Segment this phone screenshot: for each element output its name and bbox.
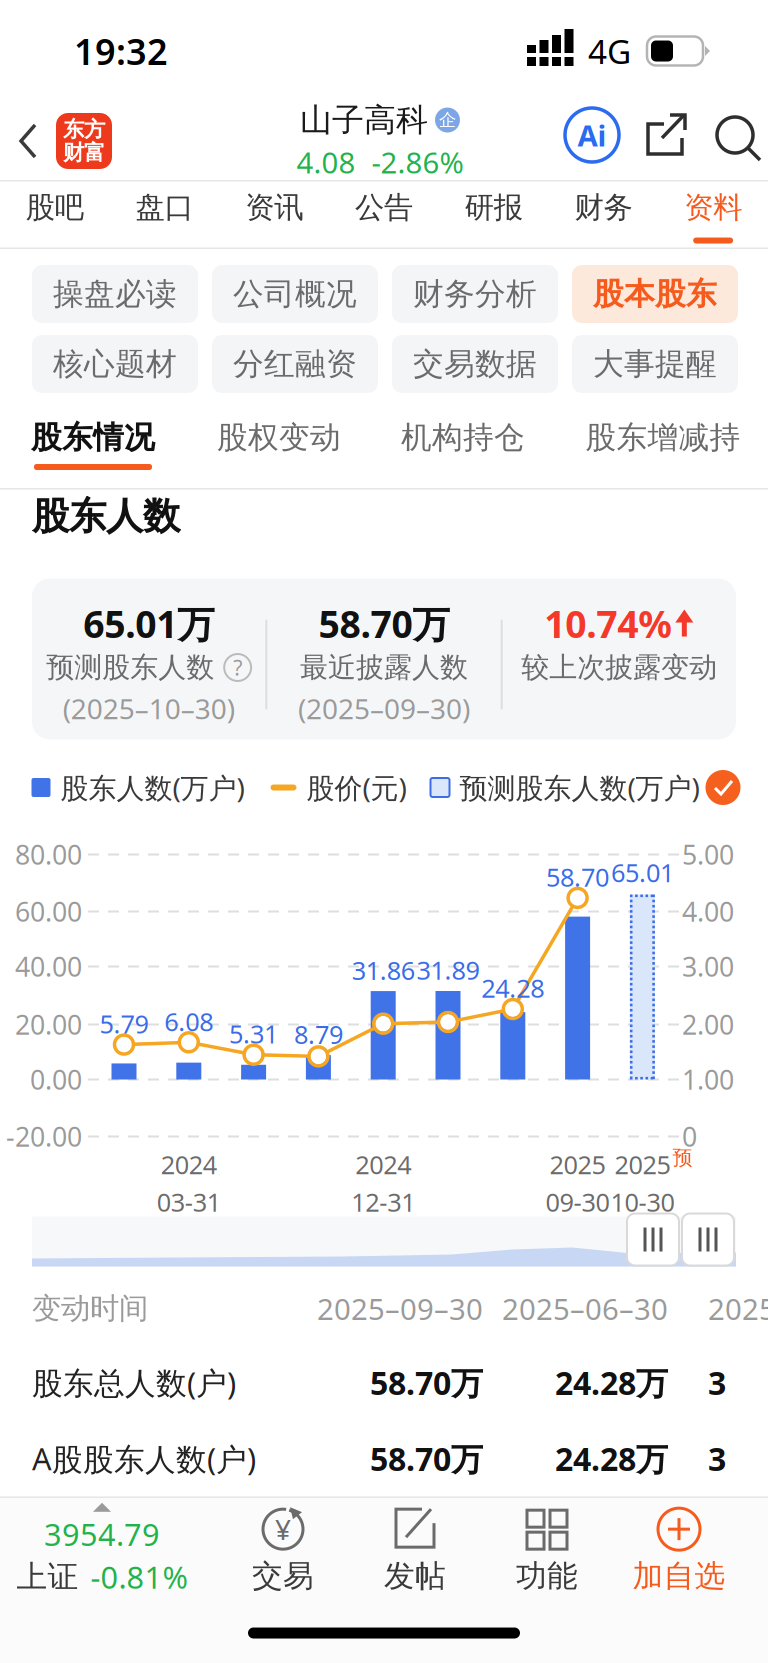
staticText: 山子高科 — [300, 100, 428, 140]
staticText: 功能 — [516, 1557, 578, 1595]
button[interactable]: 核心题材 — [32, 335, 198, 393]
button[interactable]: 发帖 — [362, 1505, 468, 1595]
staticText: 40.00 — [15, 949, 82, 984]
staticText: 盘口 — [136, 189, 194, 225]
staticText: (2025–10–30) — [63, 690, 235, 727]
staticText: 上证 — [16, 1558, 78, 1596]
staticText: 5.00 — [682, 837, 734, 872]
staticText: 19:32 — [74, 27, 168, 75]
staticText: 资料 — [684, 189, 742, 225]
staticText: 核心题材 — [53, 345, 177, 383]
staticText: 4G — [588, 29, 631, 73]
button[interactable]: 返回 — [0, 102, 56, 180]
staticText: 大事提醒 — [593, 345, 717, 383]
staticText: 03-31 — [157, 1185, 221, 1219]
staticText: 财富 — [63, 139, 105, 166]
staticText: 分红融资 — [233, 345, 357, 383]
button[interactable]: 分享 — [634, 96, 700, 174]
button[interactable]: 股东情况 — [32, 411, 154, 488]
staticText: 8.79 — [294, 1017, 343, 1051]
staticText: 股权变动 — [217, 419, 341, 456]
button[interactable]: 公告 — [329, 177, 439, 251]
staticText: ? — [233, 653, 242, 682]
staticText: 09-30 — [546, 1185, 610, 1219]
staticText: 股本股东 — [593, 275, 717, 313]
button[interactable]: 调整范围 — [682, 1213, 734, 1265]
staticText: 1.00 — [682, 1062, 734, 1097]
staticText: 企 — [439, 109, 456, 131]
button[interactable]: 大事提醒 — [572, 335, 738, 393]
staticText: 3 — [708, 1437, 726, 1480]
staticText: 较上次披露变动 — [521, 650, 717, 685]
staticText: 预测股东人数(万户) — [459, 769, 699, 806]
staticText: 5.31 — [229, 1017, 278, 1050]
staticText: 预测股东人数 — [46, 650, 214, 685]
staticText: -2.86% — [371, 143, 463, 182]
staticText: 操盘必读 — [53, 275, 177, 313]
staticText: 股东人数 — [32, 493, 180, 539]
staticText: -0.81% — [90, 1556, 187, 1597]
button[interactable]: 东方财富 — [56, 113, 112, 169]
staticText: 58.70万 — [318, 599, 449, 648]
staticText: A股股东人数(户) — [32, 1438, 256, 1479]
button[interactable]: 资讯 — [219, 177, 329, 251]
button[interactable]: 上证指数 3954.79 — [0, 1503, 204, 1597]
staticText: 2025–06–30 — [502, 1289, 668, 1328]
button[interactable]: 功能 — [494, 1505, 600, 1595]
button[interactable]: 财务 — [549, 177, 658, 251]
button[interactable]: 财务分析 — [392, 265, 558, 323]
staticText: 4.08 — [296, 143, 355, 182]
staticText: 加自选 — [632, 1557, 725, 1595]
staticText: 24.28万 — [555, 1437, 668, 1480]
staticText: 6.08 — [164, 1004, 213, 1038]
staticText: 东方 — [63, 116, 105, 142]
staticText: 2025–09–30 — [317, 1289, 483, 1328]
staticText: 5.79 — [99, 1007, 148, 1040]
button[interactable]: 加自选 — [626, 1505, 732, 1595]
staticText: 80.00 — [15, 837, 82, 872]
staticText: 预 — [672, 1145, 692, 1170]
button[interactable]: 公司概况 — [212, 265, 378, 323]
staticText: 变动时间 — [32, 1290, 148, 1326]
staticText: 2025 — [708, 1289, 768, 1328]
button[interactable]: 资料 — [658, 177, 768, 251]
button[interactable]: 调整范围 — [627, 1213, 679, 1265]
staticText: 财务 — [574, 189, 632, 225]
staticText: 交易 — [252, 1557, 314, 1595]
button[interactable]: AI 助手 — [554, 96, 630, 174]
staticText: 10.74% — [544, 599, 672, 648]
staticText: 10-30 — [610, 1185, 674, 1219]
button[interactable]: 股东增减持 — [585, 411, 741, 488]
staticText: 3 — [708, 1361, 726, 1404]
button[interactable]: 搜索 — [702, 96, 768, 174]
staticText: -20.00 — [6, 1119, 82, 1154]
staticText: 最近披露人数 — [300, 650, 468, 685]
button[interactable]: 研报 — [439, 177, 549, 251]
button[interactable]: 交易数据 — [392, 335, 558, 393]
staticText: 58.70万 — [370, 1361, 483, 1404]
staticText: 2025 — [550, 1147, 606, 1181]
staticText: 2.00 — [682, 1007, 734, 1042]
staticText: Ai — [577, 115, 606, 154]
button[interactable]: 股本股东 — [572, 265, 738, 323]
staticText: 公告 — [355, 189, 413, 225]
button[interactable]: 操盘必读 — [32, 265, 198, 323]
staticText: 交易数据 — [413, 345, 537, 383]
staticText: 31.86 — [352, 953, 415, 987]
staticText: 股东总人数(户) — [32, 1362, 236, 1403]
staticText: 股东人数(万户) — [60, 769, 244, 806]
staticText: 股东情况 — [31, 419, 155, 456]
staticText: 2025 — [614, 1147, 670, 1181]
staticText: 31.89 — [416, 953, 479, 987]
button[interactable]: ¥ — [230, 1505, 336, 1595]
button[interactable]: 机构持仓 — [400, 411, 526, 488]
staticText: 12-31 — [351, 1185, 415, 1219]
staticText: 股东增减持 — [585, 419, 740, 456]
staticText: 58.70万 — [370, 1437, 483, 1480]
button[interactable]: 股吧 — [0, 177, 110, 251]
button[interactable]: 盘口 — [110, 177, 219, 251]
staticText: 公司概况 — [233, 275, 357, 313]
staticText: 0 — [682, 1119, 697, 1154]
button[interactable]: 股权变动 — [216, 411, 342, 488]
button[interactable]: 分红融资 — [212, 335, 378, 393]
